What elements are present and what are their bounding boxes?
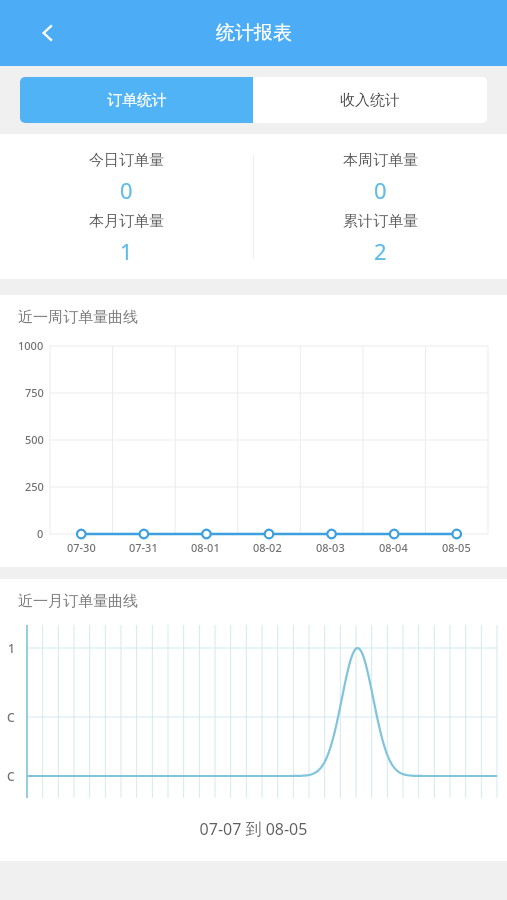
staticText: C	[7, 768, 15, 784]
staticText: 本月订单量	[89, 212, 164, 231]
staticText: 07-30	[67, 540, 96, 555]
staticText: 0	[37, 526, 44, 541]
staticText: 今日订单量	[89, 151, 164, 170]
button[interactable]: Back	[26, 11, 70, 55]
staticText: 订单统计	[107, 91, 167, 110]
staticText: 07-07 到 08-05	[0, 818, 507, 840]
staticText: 08-05	[442, 540, 471, 555]
staticText: 08-04	[379, 540, 408, 555]
staticText: 750	[25, 385, 44, 400]
button[interactable]: 收入统计	[253, 77, 487, 123]
staticText: 近一周订单量曲线	[18, 308, 138, 327]
staticText: 0	[120, 175, 133, 205]
staticText: 500	[25, 432, 44, 447]
staticText: 08-01	[191, 540, 220, 555]
staticText: 08-03	[316, 540, 345, 555]
staticText: 250	[25, 479, 44, 494]
staticText: 1	[120, 236, 133, 266]
staticText: 统计报表	[216, 21, 292, 45]
button[interactable]: 订单统计	[20, 77, 253, 123]
staticText: 累计订单量	[343, 212, 418, 231]
staticText: C	[7, 709, 15, 725]
staticText: 本周订单量	[343, 151, 418, 170]
staticText: 1	[8, 640, 15, 656]
staticText: 07-31	[129, 540, 158, 555]
staticText: 2	[374, 236, 387, 266]
staticText: 08-02	[253, 540, 282, 555]
staticText: 近一月订单量曲线	[18, 592, 138, 611]
staticText: 0	[374, 175, 387, 205]
staticText: 收入统计	[340, 91, 400, 110]
staticText: 1000	[18, 338, 44, 353]
